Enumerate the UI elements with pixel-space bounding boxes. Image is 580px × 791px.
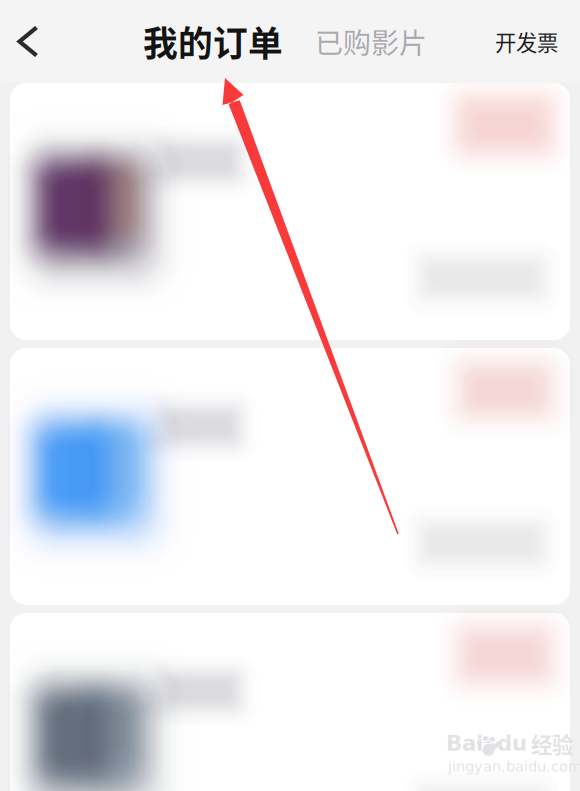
staticText: Bai <box>446 731 483 756</box>
staticText: 经验 <box>531 728 573 759</box>
staticText: du <box>497 731 527 756</box>
staticText: jingyan.baidu.com <box>448 758 580 775</box>
staticText: 我的订单 <box>143 16 283 67</box>
button[interactable]: 开发票 <box>483 6 570 76</box>
button[interactable]: Back <box>0 6 56 76</box>
button[interactable]: 我的订单 <box>143 16 283 67</box>
button[interactable] <box>10 348 570 605</box>
staticText: 已购影片 <box>315 21 427 62</box>
button[interactable]: 已购影片 <box>315 21 427 62</box>
button[interactable] <box>10 83 570 340</box>
staticText: 开发票 <box>495 26 558 57</box>
button[interactable] <box>10 613 570 791</box>
